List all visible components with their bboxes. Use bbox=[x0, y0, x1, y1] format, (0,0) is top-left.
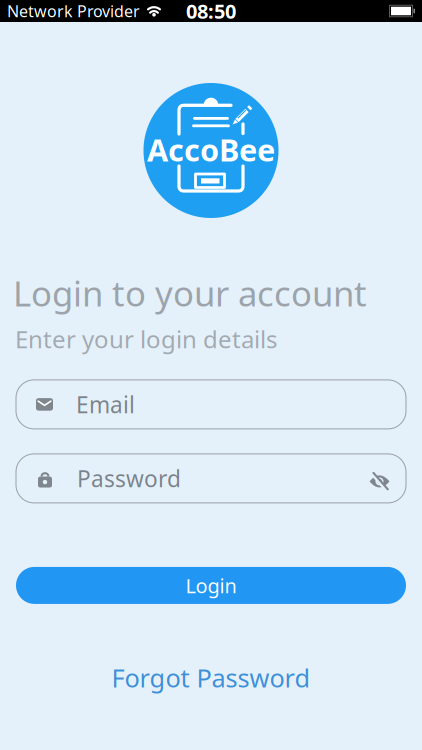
button[interactable]: Login bbox=[16, 567, 406, 604]
button[interactable]: Email bbox=[16, 380, 406, 429]
staticText: Login bbox=[185, 572, 236, 599]
staticText: Password bbox=[77, 463, 181, 493]
staticText: Email bbox=[76, 389, 135, 419]
staticText: Network Provider bbox=[7, 0, 140, 22]
staticText: AccoBee bbox=[147, 129, 275, 170]
staticText: Forgot Password bbox=[111, 661, 310, 694]
button[interactable]: Password bbox=[16, 454, 406, 503]
staticText: Login to your account bbox=[13, 270, 367, 316]
staticText: 08:50 bbox=[186, 0, 236, 24]
staticText: Enter your login details bbox=[15, 323, 277, 355]
button[interactable]: Show password bbox=[369, 469, 390, 487]
button[interactable]: Forgot Password bbox=[111, 661, 310, 694]
